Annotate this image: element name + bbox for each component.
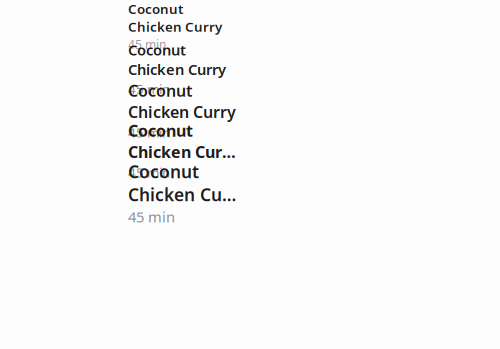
staticText: 45 min bbox=[128, 36, 166, 52]
staticText: Coconut Chicken Curry Bowl bbox=[128, 160, 238, 206]
staticText: Coconut Chicken Curry bbox=[128, 80, 236, 122]
staticText: 45 min bbox=[128, 207, 175, 226]
staticText: 45 min bbox=[128, 123, 170, 141]
staticText: 45 min bbox=[128, 163, 170, 181]
staticText: 45 min bbox=[128, 80, 170, 98]
staticText: Coconut Chicken Curry bbox=[128, 40, 226, 79]
staticText: Coconut Chicken Curry Bowl bbox=[128, 120, 238, 162]
staticText: Coconut Chicken Curry bbox=[128, 0, 222, 35]
